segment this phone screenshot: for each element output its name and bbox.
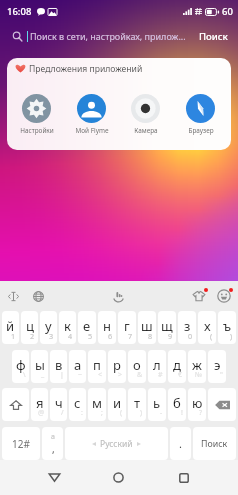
button[interactable]: Emoji: [214, 286, 234, 306]
button[interactable]: е: [78, 311, 96, 344]
button[interactable]: ю: [188, 388, 206, 421]
staticText: 3: [49, 331, 54, 341]
button[interactable]: ъ: [218, 311, 236, 344]
button[interactable]: Keyboard theme: [189, 286, 209, 306]
staticText: (: [210, 331, 213, 341]
staticText: я: [36, 394, 44, 412]
staticText: /: [61, 408, 64, 418]
staticText: |: [60, 370, 64, 380]
staticText: €: [178, 370, 183, 380]
button[interactable]: Поиск: [193, 427, 236, 460]
button[interactable]: б: [168, 388, 186, 421]
button[interactable]: Backspace: [208, 388, 236, 421]
staticText: ): [230, 331, 233, 341]
staticText: ф: [16, 356, 26, 374]
button[interactable]: Камера: [122, 94, 169, 135]
button[interactable]: й: [2, 311, 19, 344]
button[interactable]: Поиск: [196, 28, 231, 45]
staticText: Поиск: [201, 438, 228, 450]
button[interactable]: Change language: [30, 288, 47, 305]
staticText: №: [195, 370, 203, 380]
button[interactable]: ы: [31, 350, 48, 383]
button[interactable]: с: [69, 388, 86, 421]
button[interactable]: в: [50, 350, 67, 383]
staticText: \: [23, 370, 26, 380]
staticText: -: [160, 408, 163, 418]
button[interactable]: х: [198, 311, 216, 344]
button[interactable]: Shift: [2, 388, 29, 421]
staticText: >: [118, 370, 123, 380]
staticText: 60: [222, 5, 233, 18]
button[interactable]: Handwriting: [109, 287, 127, 305]
button[interactable]: Браузер: [177, 94, 224, 135]
staticText: 16:08: [7, 5, 32, 18]
button[interactable]: Поиск в сети, настройках, прилож...: [0, 23, 238, 49]
staticText: ~: [78, 370, 83, 380]
staticText: Камера: [134, 126, 158, 135]
staticText: у: [45, 317, 52, 335]
staticText: &: [137, 370, 143, 380]
button[interactable]: Настройки: [13, 94, 60, 135]
staticText: <: [98, 370, 103, 380]
staticText: 5: [88, 331, 93, 341]
button[interactable]: г: [118, 311, 136, 344]
button[interactable]: д: [168, 350, 186, 383]
button[interactable]: Recent apps: [169, 463, 198, 492]
button[interactable]: Back: [40, 463, 69, 492]
staticText: 1: [11, 331, 16, 341]
button[interactable]: .: [170, 427, 191, 460]
staticText: ч: [55, 394, 63, 412]
button[interactable]: м: [88, 388, 106, 421]
button[interactable]: у: [40, 311, 57, 344]
staticText: :: [81, 408, 83, 418]
button[interactable]: щ: [158, 311, 176, 344]
button[interactable]: ь: [148, 388, 166, 421]
staticText: ?: [199, 408, 203, 418]
button[interactable]: ж: [188, 350, 206, 383]
button[interactable]: п: [88, 350, 106, 383]
staticText: .: [179, 436, 182, 451]
button[interactable]: ф: [12, 350, 29, 383]
staticText: й: [6, 317, 15, 335]
staticText: и: [113, 394, 122, 412]
button[interactable]: ч: [50, 388, 67, 421]
staticText: ъ: [223, 317, 232, 335]
button[interactable]: н: [98, 311, 116, 344]
button[interactable]: а: [69, 350, 86, 383]
staticText: 7: [128, 331, 133, 341]
button[interactable]: ш: [138, 311, 156, 344]
staticText: 12#: [12, 437, 30, 451]
staticText: ь: [153, 394, 161, 412]
button[interactable]: р: [108, 350, 126, 383]
staticText: 9: [168, 331, 173, 341]
staticText: ): [140, 408, 143, 418]
button[interactable]: 12#: [2, 427, 40, 460]
staticText: щ: [161, 317, 173, 335]
button[interactable]: Home: [104, 463, 133, 492]
button[interactable]: ц: [21, 311, 38, 344]
button[interactable]: т: [128, 388, 146, 421]
button[interactable]: а: [42, 427, 63, 460]
button[interactable]: Move cursor: [5, 288, 22, 305]
button[interactable]: и: [108, 388, 126, 421]
staticText: т: [134, 394, 141, 412]
button[interactable]: Мой Flyme: [68, 94, 115, 135]
button[interactable]: я: [31, 388, 48, 421]
staticText: з: [184, 317, 191, 335]
button[interactable]: з: [178, 311, 196, 344]
staticText: 0: [188, 331, 193, 341]
button[interactable]: к: [59, 311, 76, 344]
button[interactable]: о: [128, 350, 146, 383]
staticText: 4: [68, 331, 73, 341]
staticText: в: [55, 356, 63, 374]
staticText: (: [120, 408, 123, 418]
button[interactable]: л: [148, 350, 166, 383]
staticText: ы: [35, 356, 45, 374]
staticText: к: [64, 317, 71, 335]
staticText: п: [93, 356, 101, 374]
button[interactable]: э: [208, 350, 226, 383]
staticText: 2: [30, 331, 35, 341]
staticText: ж: [192, 356, 202, 374]
staticText: Настройки: [20, 126, 54, 135]
button[interactable]: Русский: [65, 427, 168, 460]
